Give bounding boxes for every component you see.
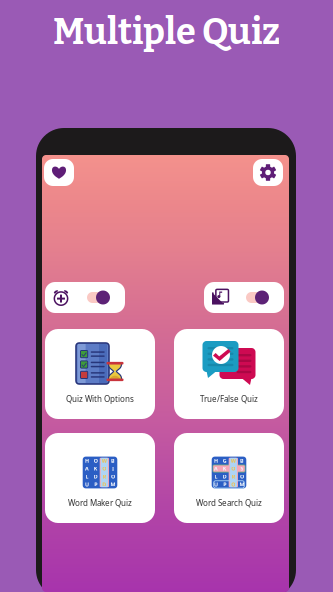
staticText: M — [239, 481, 244, 488]
staticText: M — [110, 481, 115, 488]
staticText: O — [231, 481, 235, 488]
staticText: O — [240, 473, 244, 480]
staticText: H — [214, 457, 218, 464]
staticText: H — [85, 457, 89, 464]
staticText: Word Search Quiz — [196, 498, 262, 508]
staticText: S — [240, 465, 243, 472]
staticText: A — [214, 465, 218, 472]
button[interactable]: True/False Quiz — [174, 329, 284, 419]
staticText: O — [102, 465, 106, 472]
staticText: W — [231, 457, 236, 464]
staticText: Word Maker Quiz — [68, 498, 132, 508]
button[interactable]: Reminder — [45, 282, 125, 313]
staticText: D — [102, 481, 106, 488]
staticText: U — [214, 481, 218, 488]
staticText: A — [85, 465, 89, 472]
staticText: K — [94, 465, 98, 472]
staticText: L — [85, 473, 88, 480]
button[interactable]: H — [174, 433, 284, 523]
staticText: Quiz With Options — [66, 394, 134, 404]
staticText: K — [223, 465, 227, 472]
staticText: D — [94, 473, 98, 480]
staticText: P — [94, 481, 97, 488]
staticText: L — [214, 473, 217, 480]
button[interactable]: Settings — [253, 159, 283, 186]
staticText: B — [111, 457, 115, 464]
staticText: I — [112, 465, 114, 472]
staticText: R — [103, 473, 106, 480]
staticText: G — [223, 457, 227, 464]
staticText: W — [102, 457, 107, 464]
staticText: U — [85, 481, 89, 488]
staticText: P — [223, 481, 226, 488]
staticText: D — [223, 473, 227, 480]
staticText: B — [240, 457, 244, 464]
staticText: O — [94, 457, 98, 464]
staticText: O — [111, 473, 115, 480]
button[interactable]: Sound — [204, 282, 284, 313]
button[interactable]: Favourites — [44, 159, 74, 186]
staticText: Multiple Quiz — [53, 10, 280, 54]
staticText: R — [232, 473, 235, 480]
staticText: True/False Quiz — [200, 394, 258, 404]
staticText: O — [231, 465, 235, 472]
button[interactable]: Quiz With Options — [45, 329, 155, 419]
button[interactable]: H — [45, 433, 155, 523]
